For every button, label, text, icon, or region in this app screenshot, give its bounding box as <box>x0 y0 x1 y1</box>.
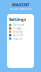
staticText: SALIENT MEASURES <box>9 7 31 11</box>
staticText: Display <box>13 30 22 33</box>
button[interactable]: Privacy <box>7 27 34 30</box>
staticText: Settings <box>9 16 26 22</box>
staticText: General <box>13 23 24 27</box>
staticText: Battery <box>13 37 22 40</box>
staticText: Sounds <box>13 33 23 37</box>
staticText: MAXINT <box>12 2 29 7</box>
button[interactable]: Battery <box>7 37 34 40</box>
button[interactable]: Display <box>7 30 34 33</box>
staticText: Privacy <box>13 27 21 30</box>
button[interactable]: General <box>7 23 34 27</box>
button[interactable]: Sounds <box>7 33 34 37</box>
